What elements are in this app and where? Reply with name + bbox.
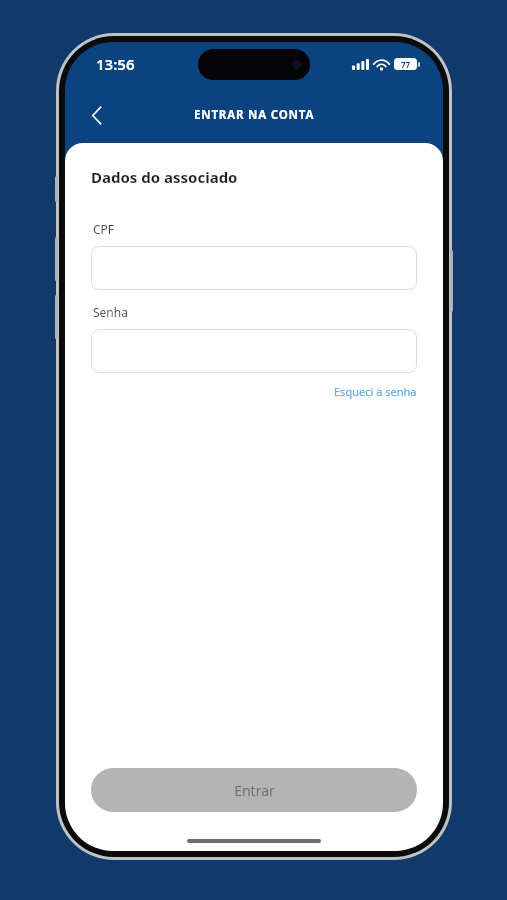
button[interactable] <box>91 329 417 373</box>
button[interactable]: Esqueci a senha <box>334 384 417 399</box>
staticText: Esqueci a senha <box>334 384 417 399</box>
staticText: CPF <box>93 221 115 237</box>
staticText: 77 <box>401 59 411 70</box>
staticText: Dados do associado <box>91 167 238 187</box>
button[interactable]: Entrar <box>91 768 417 812</box>
staticText: 13:56 <box>96 54 135 74</box>
button[interactable]: Voltar <box>75 94 117 136</box>
button[interactable] <box>91 246 417 290</box>
staticText: Entrar <box>234 781 275 800</box>
staticText: ENTRAR NA CONTA <box>194 107 315 123</box>
staticText: Senha <box>93 304 128 320</box>
